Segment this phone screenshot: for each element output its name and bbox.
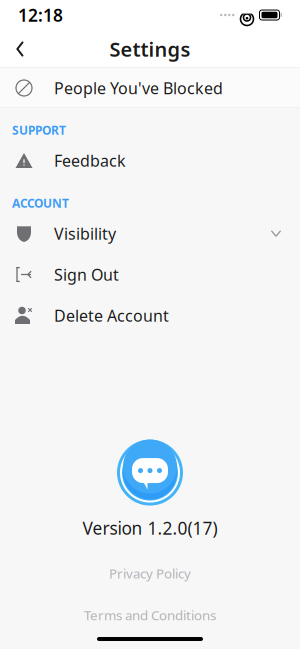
button[interactable]: Back [0,30,40,68]
staticText: Delete Account [54,305,169,326]
staticText: Version 1.2.0(17) [82,517,217,540]
staticText: Sign Out [54,264,119,285]
button[interactable]: Privacy Policy [95,560,205,587]
button[interactable]: Feedback [0,140,300,181]
staticText: Feedback [54,150,126,171]
button[interactable]: People You've Blocked [0,68,300,108]
staticText: People You've Blocked [54,77,223,99]
button[interactable]: Delete Account [0,295,300,336]
staticText: 12:18 [18,3,63,26]
staticText: ACCOUNT [12,195,69,211]
staticText: Settings [109,36,190,62]
button[interactable]: Visibility [0,213,300,254]
staticText: Privacy Policy [109,565,191,582]
staticText: SUPPORT [12,122,66,138]
button[interactable]: Sign Out [0,254,300,295]
staticText: Terms and Conditions [84,606,216,624]
button[interactable]: Terms and Conditions [70,601,230,629]
staticText: Visibility [54,223,116,244]
